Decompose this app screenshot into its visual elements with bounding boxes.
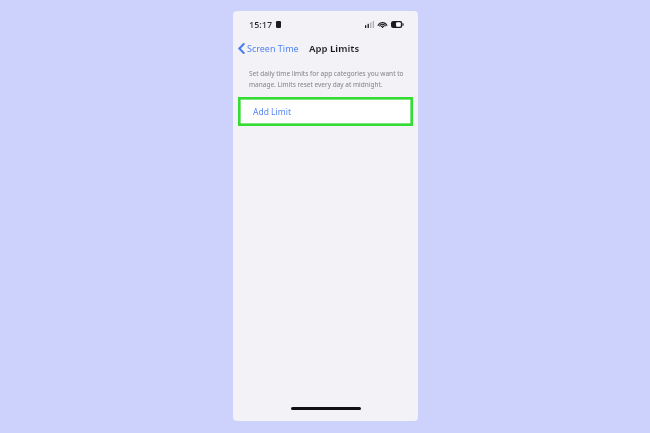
- staticText: Add Limit: [253, 106, 291, 118]
- staticText: 15:17: [249, 18, 273, 30]
- staticText: Screen Time: [247, 42, 299, 54]
- button[interactable]: Screen Time: [233, 39, 305, 57]
- staticText: App Limits: [309, 42, 360, 55]
- button[interactable]: Add Limit: [241, 100, 410, 123]
- staticText: manage. Limits reset every day at midnig…: [249, 80, 383, 89]
- other: Home indicator: [291, 407, 361, 410]
- staticText: Set daily time limits for app categories…: [249, 69, 404, 78]
